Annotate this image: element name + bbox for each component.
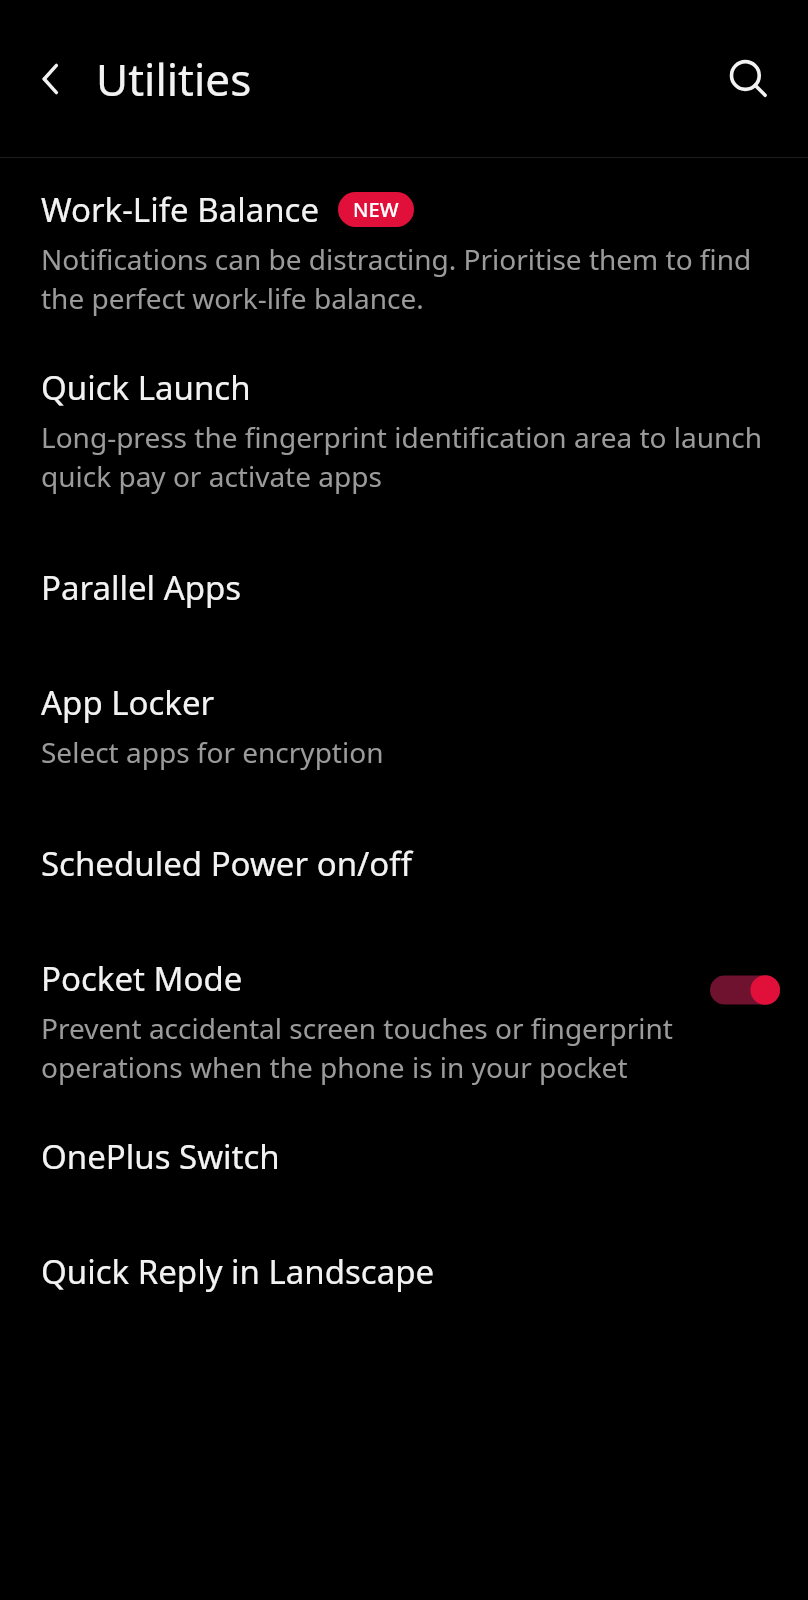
staticText: Scheduled Power on/off [41,841,412,886]
button[interactable]: Pocket Mode toggle [706,968,784,1012]
button[interactable]: Quick Reply in Landscape [0,1249,808,1294]
button[interactable]: Pocket Mode [0,956,808,1086]
button[interactable]: Scheduled Power on/off [0,841,808,886]
button[interactable]: Search [712,43,784,115]
button[interactable]: OnePlus Switch [0,1134,808,1179]
staticText: NEW [353,196,399,223]
staticText: OnePlus Switch [41,1134,280,1179]
button[interactable]: Quick Launch [0,365,808,495]
button[interactable]: Work-Life Balance [0,187,808,317]
staticText: Parallel Apps [41,565,242,610]
button[interactable]: Parallel Apps [0,565,808,610]
staticText: Long-press the fingerprint identificatio… [41,418,784,495]
staticText: Work-Life Balance [41,187,320,232]
staticText: Utilities [96,49,252,109]
staticText: Notifications can be distracting. Priori… [41,240,784,317]
button[interactable]: App Locker [0,680,808,771]
staticText: Quick Launch [41,365,251,410]
button[interactable]: Back [20,48,82,110]
staticText: Quick Reply in Landscape [41,1249,435,1294]
staticText: App Locker [41,680,215,725]
staticText: Select apps for encryption [41,733,384,771]
staticText: Prevent accidental screen touches or fin… [41,1009,690,1086]
staticText: Pocket Mode [41,956,243,1001]
